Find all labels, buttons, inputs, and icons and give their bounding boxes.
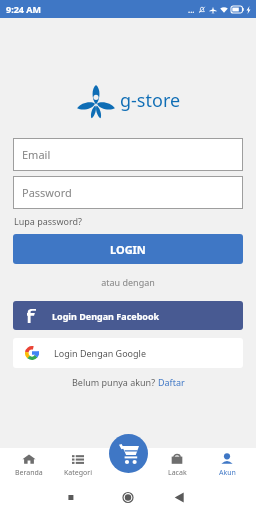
- button[interactable]: Daftar: [158, 376, 185, 388]
- staticText: atau dengan: [0, 276, 256, 288]
- staticText: Akun: [219, 468, 236, 478]
- button[interactable]: Beranda: [4, 448, 53, 483]
- staticText: Login Dengan Facebook: [52, 310, 160, 322]
- button[interactable]: Lacak: [152, 448, 202, 483]
- button[interactable]: Email: [13, 138, 243, 171]
- button[interactable]: Akun: [202, 448, 252, 483]
- button[interactable]: Login Dengan Facebook: [13, 301, 243, 330]
- staticText: Login Dengan Google: [54, 347, 146, 359]
- staticText: Lacak: [168, 468, 187, 478]
- staticText: Kategori: [64, 468, 92, 478]
- staticText: Belum punya akun?: [72, 376, 158, 388]
- button[interactable]: Kategori: [53, 448, 102, 483]
- staticText: Beranda: [15, 468, 43, 478]
- button[interactable]: LOGIN: [13, 234, 243, 264]
- staticText: Email: [22, 147, 51, 162]
- staticText: LOGIN: [110, 242, 146, 257]
- button[interactable]: Password: [13, 176, 243, 209]
- button[interactable]: Cart: [109, 434, 148, 473]
- staticText: ...: [188, 4, 195, 15]
- button[interactable]: Lupa password?: [14, 215, 82, 227]
- button[interactable]: Login Dengan Google: [13, 338, 243, 368]
- staticText: Password: [22, 185, 72, 200]
- staticText: g-store: [120, 88, 181, 113]
- staticText: 9:24 AM: [6, 3, 42, 15]
